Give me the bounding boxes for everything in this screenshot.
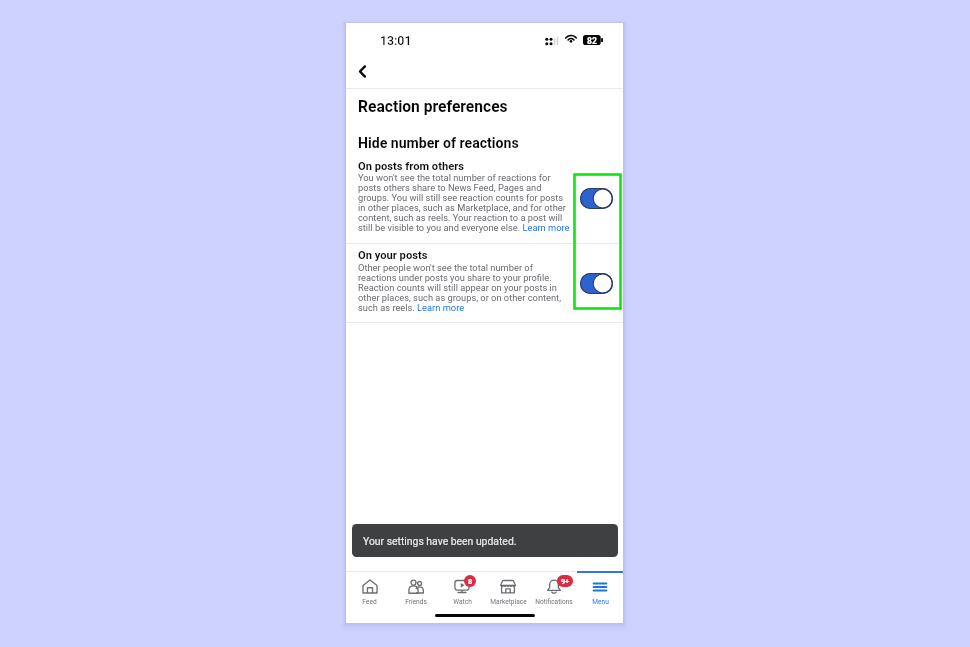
button[interactable]: Hide reaction counts on posts from other… — [580, 188, 613, 209]
staticText: You won't see the total number of reacti… — [358, 172, 571, 234]
staticText: 13:01 — [380, 33, 412, 48]
staticText: Menu — [592, 598, 609, 606]
staticText: On your posts — [358, 249, 428, 262]
staticText: Reaction preferences — [358, 98, 508, 116]
button[interactable]: Back — [348, 57, 376, 85]
staticText: Watch — [453, 598, 472, 606]
button[interactable]: Marketplace — [485, 571, 531, 611]
staticText: Friends — [405, 598, 427, 606]
button[interactable]: Feed — [346, 571, 393, 611]
staticText: Notifications — [535, 598, 573, 606]
button[interactable]: Hide reaction counts on your posts — [580, 273, 613, 294]
staticText: 8 — [468, 577, 473, 586]
button[interactable]: Menu — [577, 571, 623, 611]
button[interactable]: Your settings have been updated. — [352, 524, 618, 557]
button[interactable]: On posts from others — [346, 155, 623, 243]
button[interactable]: 9+ — [531, 571, 577, 611]
staticText: On posts from others — [358, 160, 464, 173]
staticText: Marketplace — [490, 598, 527, 606]
button[interactable]: On your posts — [346, 244, 623, 315]
staticText: Your settings have been updated. — [363, 535, 517, 547]
staticText: 82 — [587, 36, 597, 46]
staticText: 9+ — [561, 577, 570, 586]
staticText: Hide number of reactions — [358, 135, 519, 152]
staticText: Feed — [362, 598, 377, 606]
button[interactable]: 8 — [439, 571, 485, 611]
button[interactable]: Friends — [393, 571, 439, 611]
staticText: Other people won't see the total number … — [358, 262, 571, 314]
